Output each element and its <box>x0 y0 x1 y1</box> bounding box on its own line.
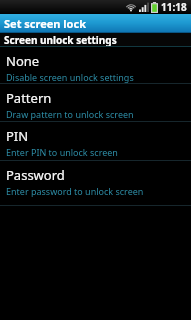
button[interactable]: Set screen lock <box>0 14 191 33</box>
staticText: Disable screen unlock settings <box>6 71 134 83</box>
staticText: Set screen lock <box>4 16 86 31</box>
staticText: Enter password to unlock screen <box>6 185 144 197</box>
staticText: None <box>6 52 40 70</box>
staticText: PIN <box>6 127 29 145</box>
button[interactable]: PIN <box>0 122 191 160</box>
staticText: 11:18 <box>161 0 187 14</box>
other: Battery <box>151 2 158 13</box>
button[interactable]: Pattern <box>0 84 191 121</box>
button[interactable]: None <box>0 47 191 83</box>
staticText: Screen unlock settings <box>4 33 117 47</box>
staticText: Password <box>6 166 65 184</box>
staticText: Pattern <box>6 89 52 107</box>
button[interactable]: Password <box>0 161 191 205</box>
staticText: Enter PIN to unlock screen <box>6 146 118 158</box>
other: Cellular signal <box>139 2 149 12</box>
staticText: Draw pattern to unlock screen <box>6 108 134 120</box>
other: Wi-Fi signal <box>125 2 137 12</box>
